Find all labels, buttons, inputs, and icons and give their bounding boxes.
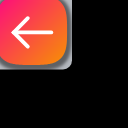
button[interactable]: Back (0, 0, 128, 128)
